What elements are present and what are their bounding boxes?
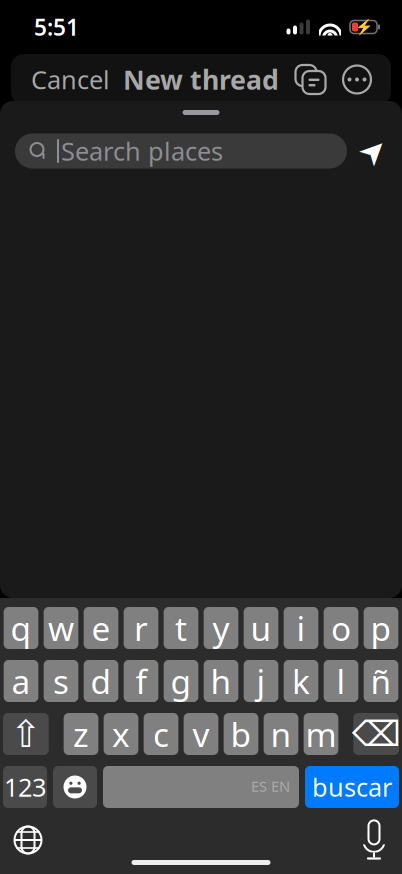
staticText: o (331, 606, 351, 650)
staticText: v (192, 712, 209, 756)
button[interactable]: Shift (3, 713, 49, 755)
button[interactable]: Use current location (347, 129, 399, 173)
button[interactable]: w (44, 607, 78, 649)
staticText: l (336, 659, 345, 703)
staticText: x (112, 712, 130, 756)
staticText: y (212, 606, 229, 650)
button[interactable]: f (124, 660, 158, 702)
staticText: 5:51 (34, 12, 79, 42)
button[interactable]: More options (337, 59, 377, 99)
button[interactable]: Delete (353, 713, 399, 755)
button[interactable]: e (84, 607, 118, 649)
staticText: u (250, 606, 271, 650)
button[interactable]: buscar (305, 766, 399, 808)
button[interactable]: r (124, 607, 158, 649)
button[interactable]: c (144, 713, 178, 755)
button[interactable]: z (64, 713, 98, 755)
staticText: k (292, 659, 310, 703)
staticText: Cancel (31, 63, 110, 96)
button[interactable]: Dictate (359, 819, 389, 861)
staticText: buscar (312, 770, 392, 804)
staticText: d (90, 659, 111, 703)
staticText: s (53, 659, 69, 703)
staticText: e (91, 606, 110, 650)
button[interactable]: d (84, 660, 118, 702)
button[interactable]: Space (103, 766, 299, 808)
button[interactable]: n (264, 713, 298, 755)
button[interactable]: x (104, 713, 138, 755)
staticText: f (135, 659, 146, 703)
button[interactable]: Next keyboard (13, 825, 43, 855)
staticText: m (305, 712, 336, 756)
button[interactable]: ñ (364, 660, 398, 702)
staticText: Search places (61, 134, 223, 168)
staticText: a (11, 659, 30, 703)
staticText: ⌫ (352, 714, 401, 754)
staticText: 123 (4, 770, 46, 804)
staticText: ⚡ (354, 19, 372, 35)
button[interactable]: Threads (291, 59, 331, 99)
button[interactable]: o (324, 607, 358, 649)
staticText: r (134, 606, 148, 650)
staticText: q (10, 606, 31, 650)
button[interactable]: b (224, 713, 258, 755)
staticText: n (270, 712, 291, 756)
staticText: h (210, 659, 231, 703)
button[interactable]: l (324, 660, 358, 702)
staticText: ES EN (251, 776, 290, 796)
button[interactable]: a (4, 660, 38, 702)
button[interactable]: Cancel (23, 55, 118, 104)
staticText: j (256, 659, 265, 703)
staticText: g (170, 659, 191, 703)
button[interactable]: u (244, 607, 278, 649)
staticText: t (175, 606, 187, 650)
button[interactable]: y (204, 607, 238, 649)
button[interactable]: h (204, 660, 238, 702)
staticText: New thread (123, 62, 279, 97)
staticText: ñ (370, 659, 391, 703)
staticText: ⇧ (10, 713, 41, 755)
button[interactable]: i (284, 607, 318, 649)
button[interactable]: s (44, 660, 78, 702)
staticText: ➤ (359, 132, 387, 170)
button[interactable]: q (4, 607, 38, 649)
staticText: i (296, 606, 305, 650)
button[interactable]: j (244, 660, 278, 702)
staticText: z (73, 712, 89, 756)
button[interactable]: t (164, 607, 198, 649)
staticText: p (370, 606, 391, 650)
button[interactable]: m (304, 713, 338, 755)
button[interactable]: v (184, 713, 218, 755)
button[interactable]: Emoji (53, 766, 97, 808)
button[interactable]: k (284, 660, 318, 702)
staticText: c (153, 712, 169, 756)
button[interactable]: p (364, 607, 398, 649)
staticText: b (230, 712, 251, 756)
button[interactable]: 123 (3, 766, 47, 808)
staticText: w (48, 606, 74, 650)
button[interactable]: g (164, 660, 198, 702)
